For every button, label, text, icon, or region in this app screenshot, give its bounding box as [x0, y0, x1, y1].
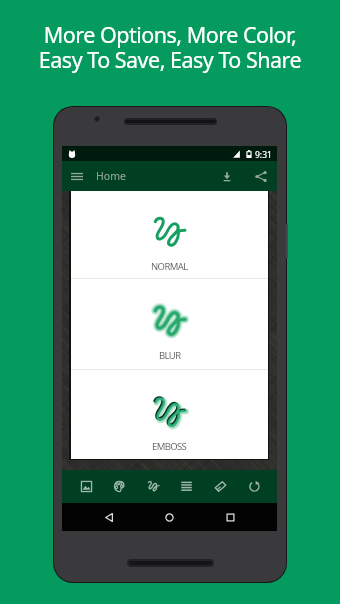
- button[interactable]: Eraser: [205, 470, 235, 503]
- staticText: NORMAL: [151, 260, 188, 273]
- staticText: BLUR: [159, 349, 181, 362]
- button[interactable]: BLUR: [71, 279, 268, 369]
- button[interactable]: Image: [71, 470, 101, 503]
- button[interactable]: EMBOSS: [71, 370, 268, 459]
- button[interactable]: Share: [247, 163, 274, 190]
- staticText: More Options, More Color, Easy To Save, …: [0, 20, 340, 74]
- button[interactable]: Palette: [104, 470, 134, 503]
- button[interactable]: Home: [156, 504, 183, 531]
- staticText: Home: [96, 169, 126, 183]
- button[interactable]: Layers: [171, 470, 201, 503]
- button[interactable]: NORMAL: [71, 191, 268, 278]
- button[interactable]: Undo: [239, 470, 269, 503]
- button[interactable]: Download: [214, 163, 240, 189]
- button[interactable]: Brush: [138, 470, 168, 503]
- button[interactable]: Back: [96, 504, 123, 531]
- button[interactable]: Recents: [217, 504, 244, 531]
- button[interactable]: Menu: [65, 164, 89, 188]
- staticText: EMBOSS: [152, 440, 187, 453]
- staticText: 9:31: [255, 149, 272, 161]
